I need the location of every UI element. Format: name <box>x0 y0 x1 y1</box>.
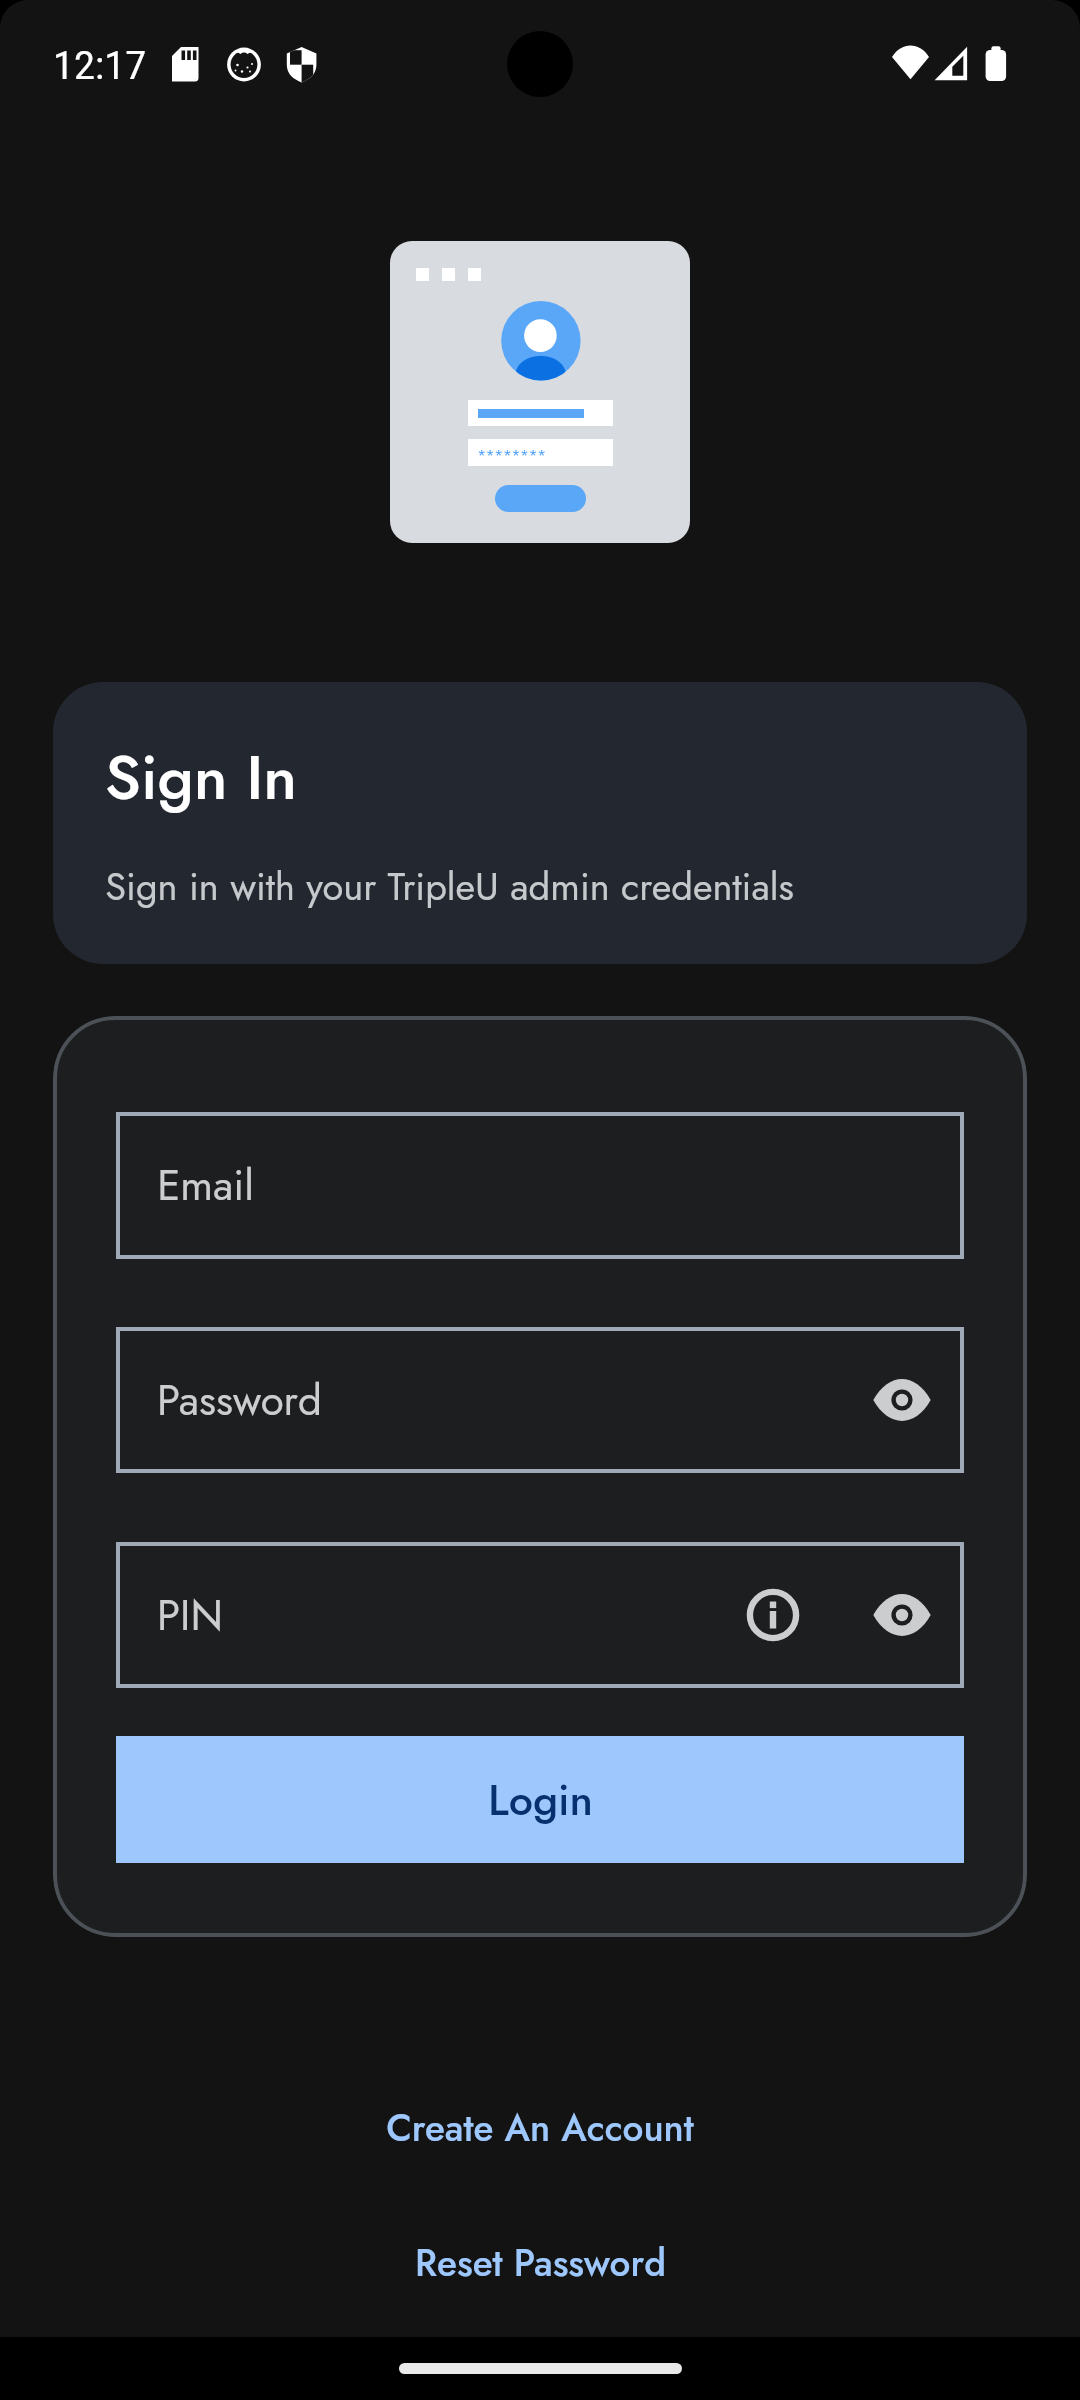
staticText: Password <box>157 1370 322 1431</box>
staticText: Create An Account <box>386 2101 694 2154</box>
button[interactable]: Password <box>116 1327 964 1473</box>
button[interactable]: Login <box>116 1736 964 1863</box>
staticText: Sign in with your TripleU admin credenti… <box>105 859 794 914</box>
staticText: Email <box>157 1155 254 1216</box>
other: PIN information <box>745 1587 801 1643</box>
staticText: Sign In <box>105 733 297 823</box>
button[interactable]: Reset Password <box>0 2229 1080 2295</box>
staticText: Login <box>488 1769 593 1831</box>
staticText: Reset Password <box>415 2236 666 2289</box>
staticText: ******** <box>477 444 546 466</box>
button[interactable]: Create An Account <box>0 2094 1080 2160</box>
other: Toggle visibility <box>872 1585 932 1645</box>
staticText: PIN <box>157 1585 223 1646</box>
other: Toggle visibility <box>872 1370 932 1430</box>
staticText: 12:17 <box>53 43 147 89</box>
button[interactable]: Email <box>116 1112 964 1259</box>
button[interactable]: PIN <box>116 1542 964 1688</box>
